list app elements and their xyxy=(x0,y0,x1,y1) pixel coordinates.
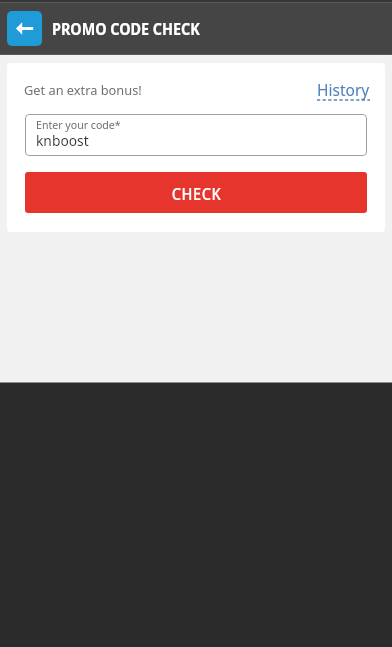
button[interactable]: History xyxy=(317,79,370,103)
staticText: PROMO CODE CHECK xyxy=(52,17,200,40)
button[interactable]: Back xyxy=(7,11,42,46)
staticText: History xyxy=(317,79,370,100)
staticText: knboost xyxy=(36,131,89,150)
staticText: CHECK xyxy=(171,184,222,205)
button[interactable]: Enter your code* xyxy=(25,114,367,156)
staticText: Enter your code* xyxy=(36,118,121,132)
button[interactable]: CHECK xyxy=(25,172,367,213)
staticText: Get an extra bonus! xyxy=(24,81,142,99)
